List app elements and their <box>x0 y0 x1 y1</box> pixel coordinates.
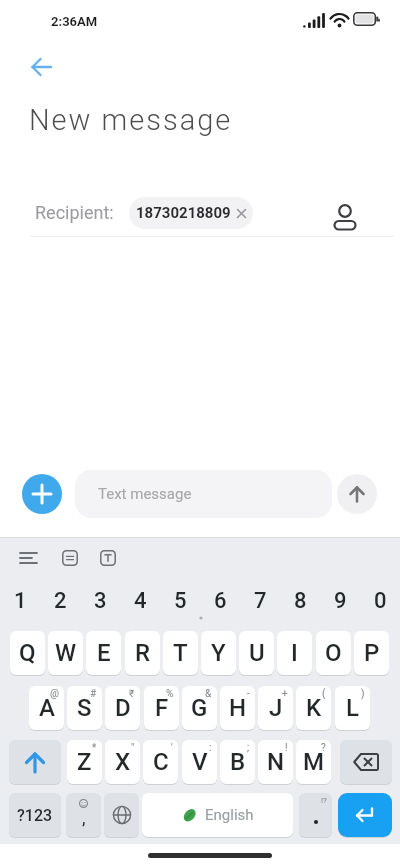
staticText: * <box>92 742 97 754</box>
button[interactable]: L <box>335 686 370 730</box>
staticText: O <box>325 639 342 667</box>
staticText: 0 <box>374 588 387 614</box>
staticText: Text message <box>98 485 192 503</box>
button[interactable]: Q <box>10 631 45 675</box>
staticText: F <box>155 694 169 722</box>
button[interactable]: Y <box>201 631 236 675</box>
button[interactable]: 5 <box>160 588 200 614</box>
button[interactable] <box>22 474 62 514</box>
staticText: 18730218809 <box>136 204 231 222</box>
staticText: B <box>230 748 246 776</box>
button[interactable]: I <box>277 631 312 675</box>
staticText: U <box>249 639 265 667</box>
button[interactable]: W <box>48 631 83 675</box>
staticText: J <box>269 694 283 722</box>
button[interactable]: J <box>258 686 293 730</box>
button[interactable]: A <box>29 686 64 730</box>
staticText: 7 <box>254 588 267 614</box>
staticText: 8 <box>294 588 307 614</box>
button[interactable]: D <box>105 686 140 730</box>
staticText: ' <box>171 742 173 754</box>
staticText: Y <box>211 639 226 667</box>
staticText: " <box>131 742 135 754</box>
staticText: ! <box>285 742 288 754</box>
staticText: Q <box>19 639 36 667</box>
staticText: V <box>192 748 208 776</box>
staticText: A <box>39 694 55 722</box>
staticText: + <box>282 688 288 700</box>
button[interactable]: B <box>220 740 255 784</box>
staticText: English <box>205 806 254 824</box>
staticText: 1 <box>14 588 27 614</box>
staticText: - <box>247 688 250 700</box>
button[interactable]: !? <box>299 793 332 837</box>
button[interactable] <box>93 545 123 571</box>
button[interactable]: 3 <box>80 588 120 614</box>
staticText: G <box>191 694 208 722</box>
button[interactable]: Z <box>67 740 102 784</box>
button[interactable]: 8 <box>280 588 320 614</box>
button[interactable]: 7 <box>240 588 280 614</box>
button[interactable] <box>340 740 392 784</box>
staticText: 9 <box>334 588 347 614</box>
button[interactable] <box>24 50 58 84</box>
button[interactable]: M <box>296 740 331 784</box>
button[interactable]: 0 <box>360 588 400 614</box>
button[interactable]: V <box>182 740 217 784</box>
staticText: D <box>115 694 131 722</box>
staticText: New message <box>29 103 233 137</box>
button[interactable]: ?123 <box>9 793 61 837</box>
staticText: M <box>303 748 325 776</box>
button[interactable]: 9 <box>320 588 360 614</box>
button[interactable]: T <box>163 631 198 675</box>
button[interactable]: English <box>142 793 293 837</box>
button[interactable]: N <box>258 740 293 784</box>
button[interactable]: X <box>105 740 140 784</box>
button[interactable] <box>55 545 85 571</box>
staticText: ; <box>247 742 250 754</box>
button[interactable] <box>9 740 61 784</box>
button[interactable] <box>337 474 377 514</box>
button[interactable]: C <box>143 740 178 784</box>
staticText: 3 <box>94 588 107 614</box>
staticText: : <box>209 742 212 754</box>
staticText: 2 <box>54 588 67 614</box>
button[interactable]: 18730218809 <box>129 197 253 229</box>
button[interactable]: H <box>220 686 255 730</box>
button[interactable]: 4 <box>120 588 160 614</box>
staticText: 6 <box>214 588 227 614</box>
staticText: ₹ <box>129 688 135 700</box>
button[interactable]: E <box>86 631 121 675</box>
button[interactable] <box>13 545 43 571</box>
staticText: 4 <box>134 588 147 614</box>
button[interactable]: Text message <box>75 470 332 518</box>
button[interactable]: U <box>239 631 274 675</box>
staticText: # <box>90 688 97 700</box>
button[interactable]: O <box>316 631 351 675</box>
button[interactable]: 6 <box>200 588 240 614</box>
staticText: P <box>364 639 380 667</box>
staticText: ? <box>321 742 326 754</box>
button[interactable]: K <box>296 686 331 730</box>
button[interactable]: R <box>125 631 160 675</box>
staticText: L <box>346 694 359 722</box>
button[interactable]: , <box>66 793 101 837</box>
staticText: & <box>205 688 212 700</box>
button[interactable]: S <box>67 686 102 730</box>
button[interactable]: P <box>354 631 389 675</box>
staticText: 5 <box>174 588 187 614</box>
staticText: C <box>153 748 169 776</box>
button[interactable]: G <box>182 686 217 730</box>
staticText: R <box>135 639 150 667</box>
staticText: N <box>267 748 285 776</box>
staticText: E <box>97 639 111 667</box>
button[interactable]: 2 <box>40 588 80 614</box>
button[interactable]: 1 <box>0 588 40 614</box>
staticText: ( <box>322 688 326 700</box>
button[interactable]: F <box>144 686 179 730</box>
button[interactable] <box>338 793 392 837</box>
button[interactable] <box>104 793 139 837</box>
button[interactable] <box>327 197 363 233</box>
staticText: S <box>77 694 92 722</box>
staticText: W <box>55 639 77 667</box>
